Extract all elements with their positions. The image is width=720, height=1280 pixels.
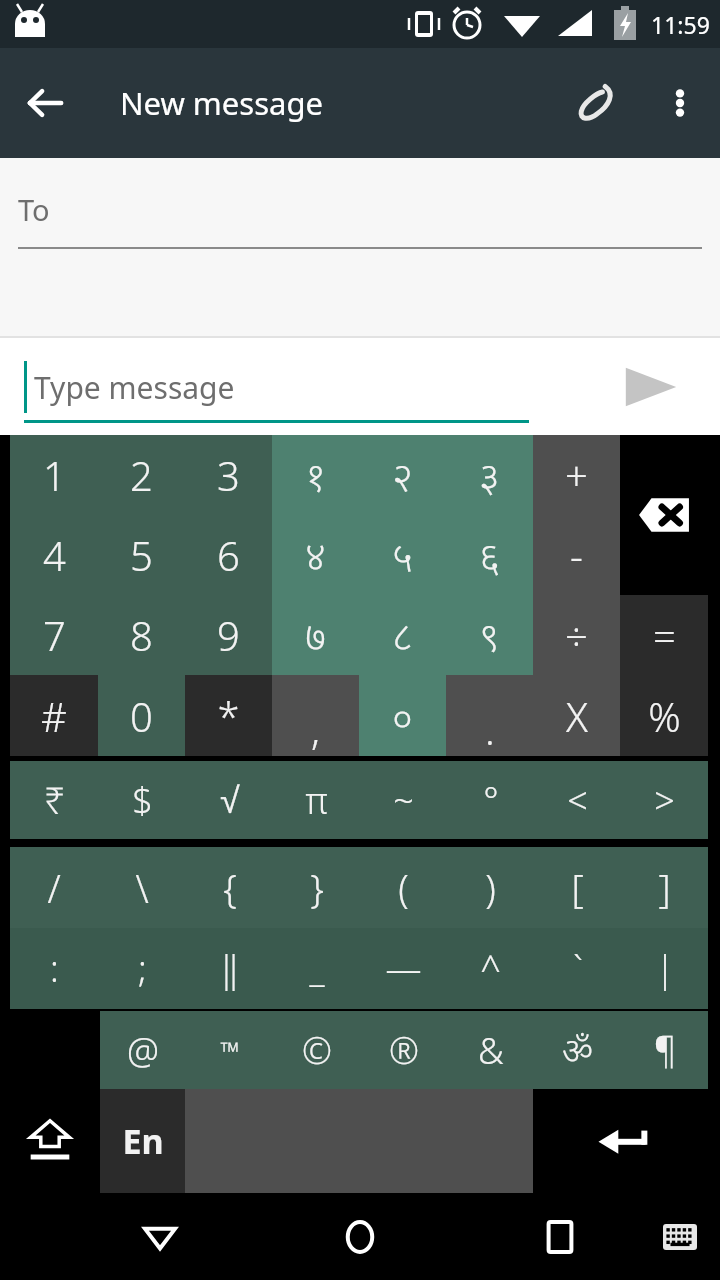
staticText: _ xyxy=(309,944,325,993)
staticText: ^ xyxy=(480,944,501,993)
button[interactable]: \ xyxy=(98,847,186,928)
staticText: * xyxy=(217,689,240,743)
button[interactable]: — xyxy=(360,928,447,1009)
button[interactable]: ) xyxy=(447,847,534,928)
button[interactable]: Change keyboard xyxy=(644,1201,716,1273)
staticText: New message xyxy=(120,82,323,124)
button[interactable]: ° xyxy=(447,761,534,839)
button[interactable]: ~ xyxy=(360,761,447,839)
staticText: ` xyxy=(573,944,583,993)
staticText: [ xyxy=(571,862,584,914)
button[interactable]: & xyxy=(447,1011,534,1089)
button[interactable]: > xyxy=(621,761,708,839)
button[interactable]: @ xyxy=(100,1011,186,1089)
staticText: / xyxy=(47,862,61,914)
button[interactable]: _ xyxy=(273,928,360,1009)
button[interactable]: En xyxy=(100,1089,185,1193)
staticText: 5 xyxy=(130,528,153,582)
button[interactable]: Recents xyxy=(520,1197,600,1277)
button[interactable]: 5 xyxy=(98,515,185,595)
button[interactable]: 6 xyxy=(185,515,272,595)
staticText: ÷ xyxy=(565,608,588,662)
button[interactable]: Attach xyxy=(552,59,640,147)
button[interactable]: To xyxy=(0,158,720,338)
button[interactable]: ` xyxy=(534,928,621,1009)
button[interactable]: ६ xyxy=(446,515,533,595)
button[interactable]: + xyxy=(533,435,620,515)
staticText: 7 xyxy=(43,608,66,662)
staticText: १ xyxy=(305,448,326,502)
button[interactable]: Home xyxy=(320,1197,400,1277)
button[interactable]: . xyxy=(446,675,533,756)
staticText: ८ xyxy=(392,608,413,662)
staticText: > xyxy=(654,776,675,825)
button[interactable]: © xyxy=(273,1011,360,1089)
button[interactable]: % xyxy=(620,675,708,756)
button[interactable]: ® xyxy=(360,1011,447,1089)
button[interactable]: [ xyxy=(534,847,621,928)
button[interactable]: = xyxy=(620,595,708,675)
button[interactable]: ४ xyxy=(272,515,359,595)
staticText: To xyxy=(18,190,50,229)
button[interactable]: $ xyxy=(98,761,186,839)
button[interactable]: Type message xyxy=(24,351,529,423)
staticText: | xyxy=(655,944,675,993)
button[interactable]: # xyxy=(10,675,98,756)
button[interactable]: - xyxy=(533,515,620,595)
button[interactable]: 9 xyxy=(185,595,272,675)
staticText: ॐ xyxy=(562,1026,593,1075)
button[interactable]: Back xyxy=(0,58,90,148)
button[interactable]: ० xyxy=(359,675,446,756)
button[interactable]: ™ xyxy=(186,1011,273,1089)
button[interactable]: २ xyxy=(359,435,446,515)
button[interactable]: X xyxy=(533,675,620,756)
button[interactable]: : xyxy=(10,928,98,1009)
button[interactable]: ÷ xyxy=(533,595,620,675)
button[interactable]: 7 xyxy=(10,595,98,675)
button[interactable]: 0 xyxy=(98,675,185,756)
button[interactable]: Send xyxy=(606,342,696,432)
button[interactable]: ३ xyxy=(446,435,533,515)
staticText: } xyxy=(310,862,324,914)
button[interactable]: 1 xyxy=(10,435,98,515)
button[interactable]: 4 xyxy=(10,515,98,595)
button[interactable]: ॐ xyxy=(534,1011,621,1089)
button[interactable]: ५ xyxy=(359,515,446,595)
button[interactable]: √ xyxy=(186,761,273,839)
button[interactable]: Shift xyxy=(0,1089,100,1193)
staticText: ~ xyxy=(393,776,414,825)
button[interactable]: 2 xyxy=(98,435,185,515)
button[interactable]: ] xyxy=(621,847,708,928)
button[interactable]: ^ xyxy=(447,928,534,1009)
button[interactable]: 3 xyxy=(185,435,272,515)
button[interactable]: ¶ xyxy=(621,1011,708,1089)
button[interactable]: < xyxy=(534,761,621,839)
button[interactable]: | xyxy=(621,928,708,1009)
button[interactable]: Enter xyxy=(533,1089,720,1193)
staticText: 9 xyxy=(217,608,240,662)
staticText: ₹ xyxy=(44,776,65,825)
button[interactable]: ; xyxy=(98,928,186,1009)
button[interactable]: ₹ xyxy=(10,761,98,839)
staticText: √ xyxy=(220,780,240,820)
button[interactable]: , xyxy=(272,675,359,756)
button[interactable]: ( xyxy=(360,847,447,928)
button[interactable]: } xyxy=(273,847,360,928)
button[interactable]: ८ xyxy=(359,595,446,675)
button[interactable]: 8 xyxy=(98,595,185,675)
staticText: # xyxy=(41,689,67,743)
button[interactable]: १ xyxy=(272,435,359,515)
button[interactable]: { xyxy=(186,847,273,928)
button[interactable]: ७ xyxy=(272,595,359,675)
button[interactable]: ९ xyxy=(446,595,533,675)
button[interactable]: Backspace xyxy=(620,435,708,595)
button[interactable]: / xyxy=(10,847,98,928)
staticText: 4 xyxy=(43,528,66,582)
button[interactable]: Back xyxy=(120,1197,200,1277)
button[interactable]: More options xyxy=(640,63,720,143)
button[interactable]: π xyxy=(273,761,360,839)
button[interactable]: * xyxy=(185,675,272,756)
button[interactable]: ‖ xyxy=(186,928,273,1009)
staticText: ° xyxy=(483,776,499,825)
